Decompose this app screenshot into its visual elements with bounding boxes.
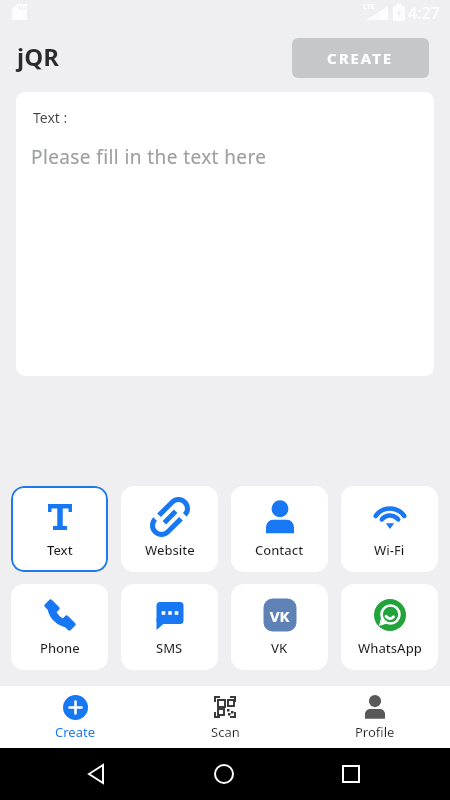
button[interactable]: Scan (150, 686, 300, 748)
button[interactable]: Website (121, 486, 218, 572)
button[interactable]: VK (231, 584, 328, 670)
staticText: Please fill in the text here (31, 144, 267, 170)
button[interactable] (77, 754, 117, 794)
staticText: Contact (255, 541, 304, 559)
button[interactable]: WhatsApp (341, 584, 438, 670)
staticText: Wi-Fi (374, 541, 405, 559)
button[interactable]: Contact (231, 486, 328, 572)
button[interactable]: Phone (11, 584, 108, 670)
staticText: 4:27 (408, 2, 440, 24)
button[interactable]: Create (0, 686, 150, 748)
staticText: Website (145, 541, 195, 559)
staticText: VK (231, 606, 328, 626)
staticText: Text (47, 541, 73, 559)
staticText: Text : (33, 108, 68, 127)
staticText: Phone (40, 639, 80, 657)
staticText: LTE (363, 2, 375, 12)
staticText: SMS (156, 639, 183, 657)
staticText: CREATE (327, 48, 394, 68)
button[interactable]: CREATE (292, 38, 429, 78)
staticText: Scan (211, 723, 240, 741)
button[interactable]: Text (11, 486, 108, 572)
staticText: Create (55, 723, 95, 741)
staticText: jQR (17, 40, 59, 73)
button[interactable]: Wi-Fi (341, 486, 438, 572)
staticText: WhatsApp (358, 639, 422, 657)
button[interactable] (331, 754, 371, 794)
button[interactable]: SMS (121, 584, 218, 670)
button[interactable]: Text : (16, 92, 434, 376)
button[interactable] (204, 754, 244, 794)
staticText: VK (271, 639, 288, 657)
staticText: Profile (355, 723, 395, 741)
button[interactable]: Profile (300, 686, 450, 748)
